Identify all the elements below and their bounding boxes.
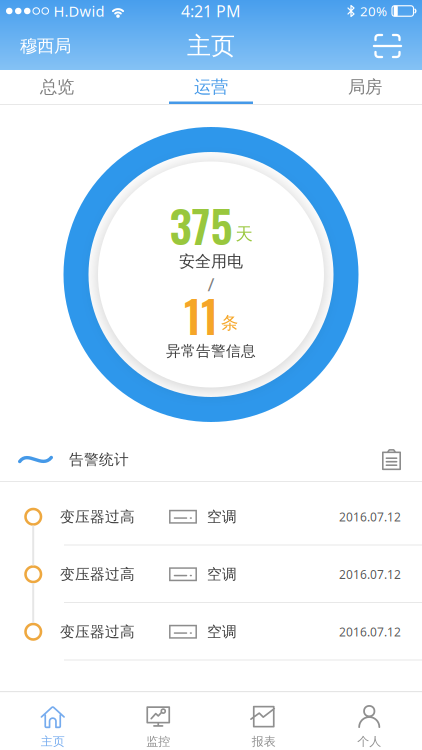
staticText: 2016.07.12 bbox=[339, 624, 401, 640]
staticText: 375 bbox=[169, 192, 232, 258]
staticText: 异常告警信息 bbox=[166, 342, 256, 360]
staticText: 天 bbox=[235, 223, 252, 245]
staticText: 运营 bbox=[194, 76, 228, 98]
staticText: 报表 bbox=[252, 734, 276, 749]
staticText: 主页 bbox=[41, 734, 65, 749]
staticText: 11 bbox=[184, 282, 218, 348]
staticText: 条 bbox=[221, 312, 238, 334]
staticText: 空调 bbox=[207, 508, 237, 526]
staticText: 变压器过高 bbox=[60, 508, 135, 526]
staticText: H.Dwid bbox=[53, 1, 104, 21]
staticText: 变压器过高 bbox=[60, 565, 135, 583]
staticText: / bbox=[207, 272, 214, 296]
staticText: 2016.07.12 bbox=[339, 509, 401, 525]
staticText: 个人 bbox=[357, 734, 381, 749]
staticText: 空调 bbox=[207, 565, 237, 583]
staticText: 4:21 PM bbox=[181, 0, 241, 22]
staticText: 2016.07.12 bbox=[339, 566, 401, 582]
staticText: 变压器过高 bbox=[60, 623, 135, 641]
staticText: 空调 bbox=[207, 623, 237, 641]
staticText: 主页 bbox=[187, 31, 235, 61]
staticText: 局房 bbox=[348, 76, 382, 98]
staticText: 告警统计 bbox=[69, 450, 129, 468]
staticText: 穆西局 bbox=[20, 35, 71, 57]
staticText: 20% bbox=[360, 2, 387, 20]
staticText: 安全用电 bbox=[179, 252, 243, 271]
staticText: 总览 bbox=[40, 76, 74, 98]
staticText: 监控 bbox=[146, 734, 170, 749]
